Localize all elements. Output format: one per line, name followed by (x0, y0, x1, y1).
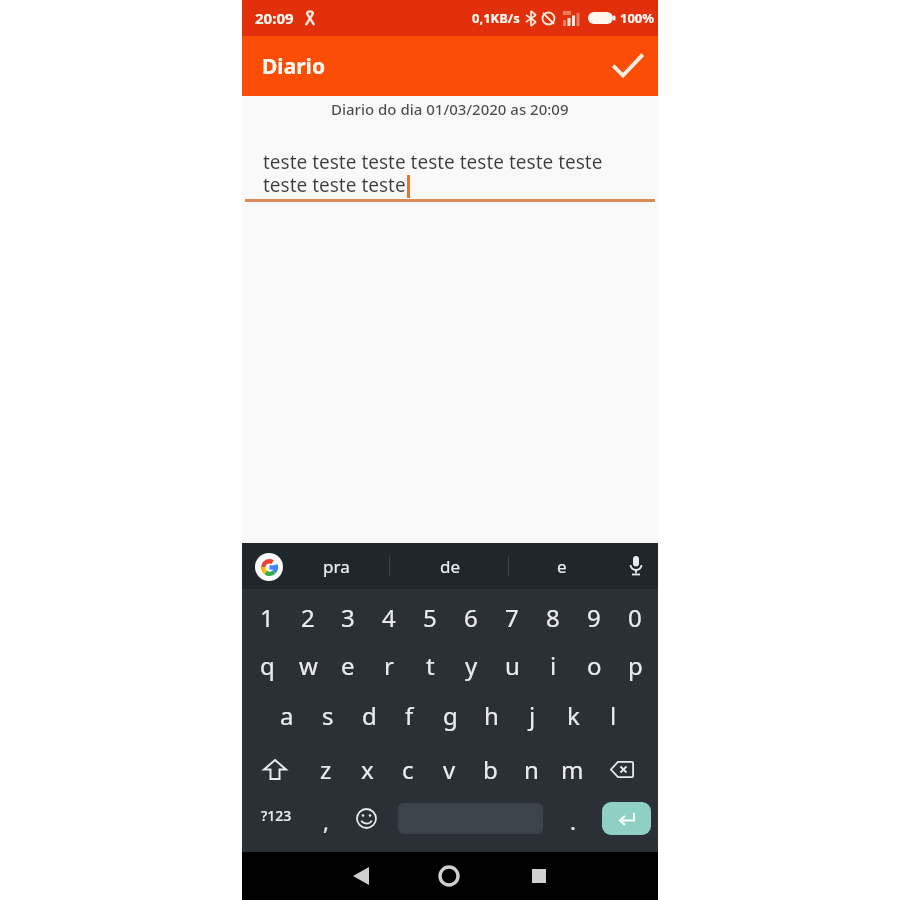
staticText: j (529, 699, 536, 732)
staticText: 0 (628, 601, 642, 634)
staticText: 20:09 (255, 8, 294, 28)
staticText: Diario (262, 52, 326, 81)
button[interactable] (255, 553, 283, 581)
button[interactable]: k (552, 691, 594, 739)
button[interactable] (337, 852, 385, 900)
staticText: v (443, 753, 456, 786)
button[interactable]: m (551, 745, 593, 793)
staticText: 3 (341, 601, 355, 634)
staticText: z (320, 753, 332, 786)
staticText: d (362, 699, 377, 732)
button[interactable]: p (614, 641, 656, 689)
staticText: f (405, 699, 414, 732)
staticText: de (440, 555, 461, 578)
staticText: 8 (546, 601, 560, 634)
button[interactable]: ?123 (255, 791, 297, 839)
button[interactable]: 7 (491, 593, 533, 641)
staticText: 7 (505, 601, 519, 634)
button[interactable]: g (429, 691, 471, 739)
button[interactable]: a (266, 691, 308, 739)
staticText: 9 (587, 601, 601, 634)
button[interactable]: u (491, 641, 533, 689)
button[interactable]: r (368, 641, 410, 689)
staticText: teste teste teste teste teste teste test… (263, 149, 603, 198)
button[interactable]: q (246, 641, 288, 689)
button[interactable]: teste teste teste teste teste teste test… (263, 149, 603, 198)
staticText: s (322, 699, 334, 732)
button[interactable] (345, 794, 387, 842)
button[interactable]: v (428, 745, 470, 793)
button[interactable]: w (287, 641, 329, 689)
button[interactable]: 0 (614, 593, 656, 641)
button[interactable] (515, 852, 563, 900)
staticText: m (561, 753, 584, 786)
staticText: 5 (423, 601, 437, 634)
staticText: 0,1KB/s (472, 9, 520, 27)
button[interactable]: e (522, 543, 602, 589)
button[interactable]: n (510, 745, 552, 793)
button[interactable]: 6 (450, 593, 492, 641)
staticText: , (323, 806, 329, 836)
staticText: w (299, 649, 318, 682)
button[interactable] (608, 46, 648, 86)
staticText: u (505, 649, 520, 682)
staticText: 2 (301, 601, 315, 634)
button[interactable]: 4 (368, 593, 410, 641)
button[interactable]: e (327, 641, 369, 689)
button[interactable] (620, 550, 652, 582)
button[interactable]: z (305, 745, 347, 793)
button[interactable]: 8 (532, 593, 574, 641)
staticText: r (384, 649, 394, 682)
staticText: 1 (260, 601, 274, 634)
staticText: Diario do dia 01/03/2020 as 20:09 (331, 99, 569, 119)
button[interactable] (254, 745, 296, 793)
button[interactable]: l (592, 691, 634, 739)
staticText: 4 (382, 601, 396, 634)
staticText: o (587, 649, 602, 682)
button[interactable]: d (348, 691, 390, 739)
button[interactable]: o (573, 641, 615, 689)
button[interactable]: t (409, 641, 451, 689)
staticText: e (557, 555, 567, 578)
staticText: ?123 (261, 806, 292, 825)
staticText: y (465, 649, 478, 682)
staticText: x (361, 753, 374, 786)
button[interactable] (602, 802, 651, 835)
button[interactable]: 2 (287, 593, 329, 641)
button[interactable]: h (470, 691, 512, 739)
staticText: . (570, 806, 576, 836)
button[interactable]: i (532, 641, 574, 689)
staticText: p (628, 649, 643, 682)
staticText: n (524, 753, 539, 786)
button[interactable]: y (450, 641, 492, 689)
staticText: l (610, 699, 617, 732)
staticText: q (260, 649, 275, 682)
staticText: b (483, 753, 498, 786)
button[interactable] (598, 745, 646, 793)
staticText: 100% (620, 9, 655, 27)
button[interactable]: 5 (409, 593, 451, 641)
button[interactable]: pra (296, 543, 376, 589)
staticText: 6 (464, 601, 478, 634)
staticText: k (567, 699, 580, 732)
button[interactable]: 9 (573, 593, 615, 641)
staticText: i (550, 649, 557, 682)
button[interactable]: x (346, 745, 388, 793)
button[interactable] (425, 852, 473, 900)
button[interactable]: . (552, 797, 594, 845)
staticText: h (484, 699, 499, 732)
button[interactable]: f (388, 691, 430, 739)
button[interactable]: 3 (327, 593, 369, 641)
staticText: a (280, 699, 294, 732)
button[interactable]: s (307, 691, 349, 739)
staticText: c (402, 753, 414, 786)
button[interactable]: , (305, 797, 347, 845)
staticText: e (341, 649, 355, 682)
button[interactable]: j (511, 691, 553, 739)
button[interactable]: b (469, 745, 511, 793)
button[interactable]: de (410, 543, 490, 589)
staticText: g (443, 699, 458, 732)
button[interactable]: c (387, 745, 429, 793)
button[interactable]: 1 (246, 593, 288, 641)
